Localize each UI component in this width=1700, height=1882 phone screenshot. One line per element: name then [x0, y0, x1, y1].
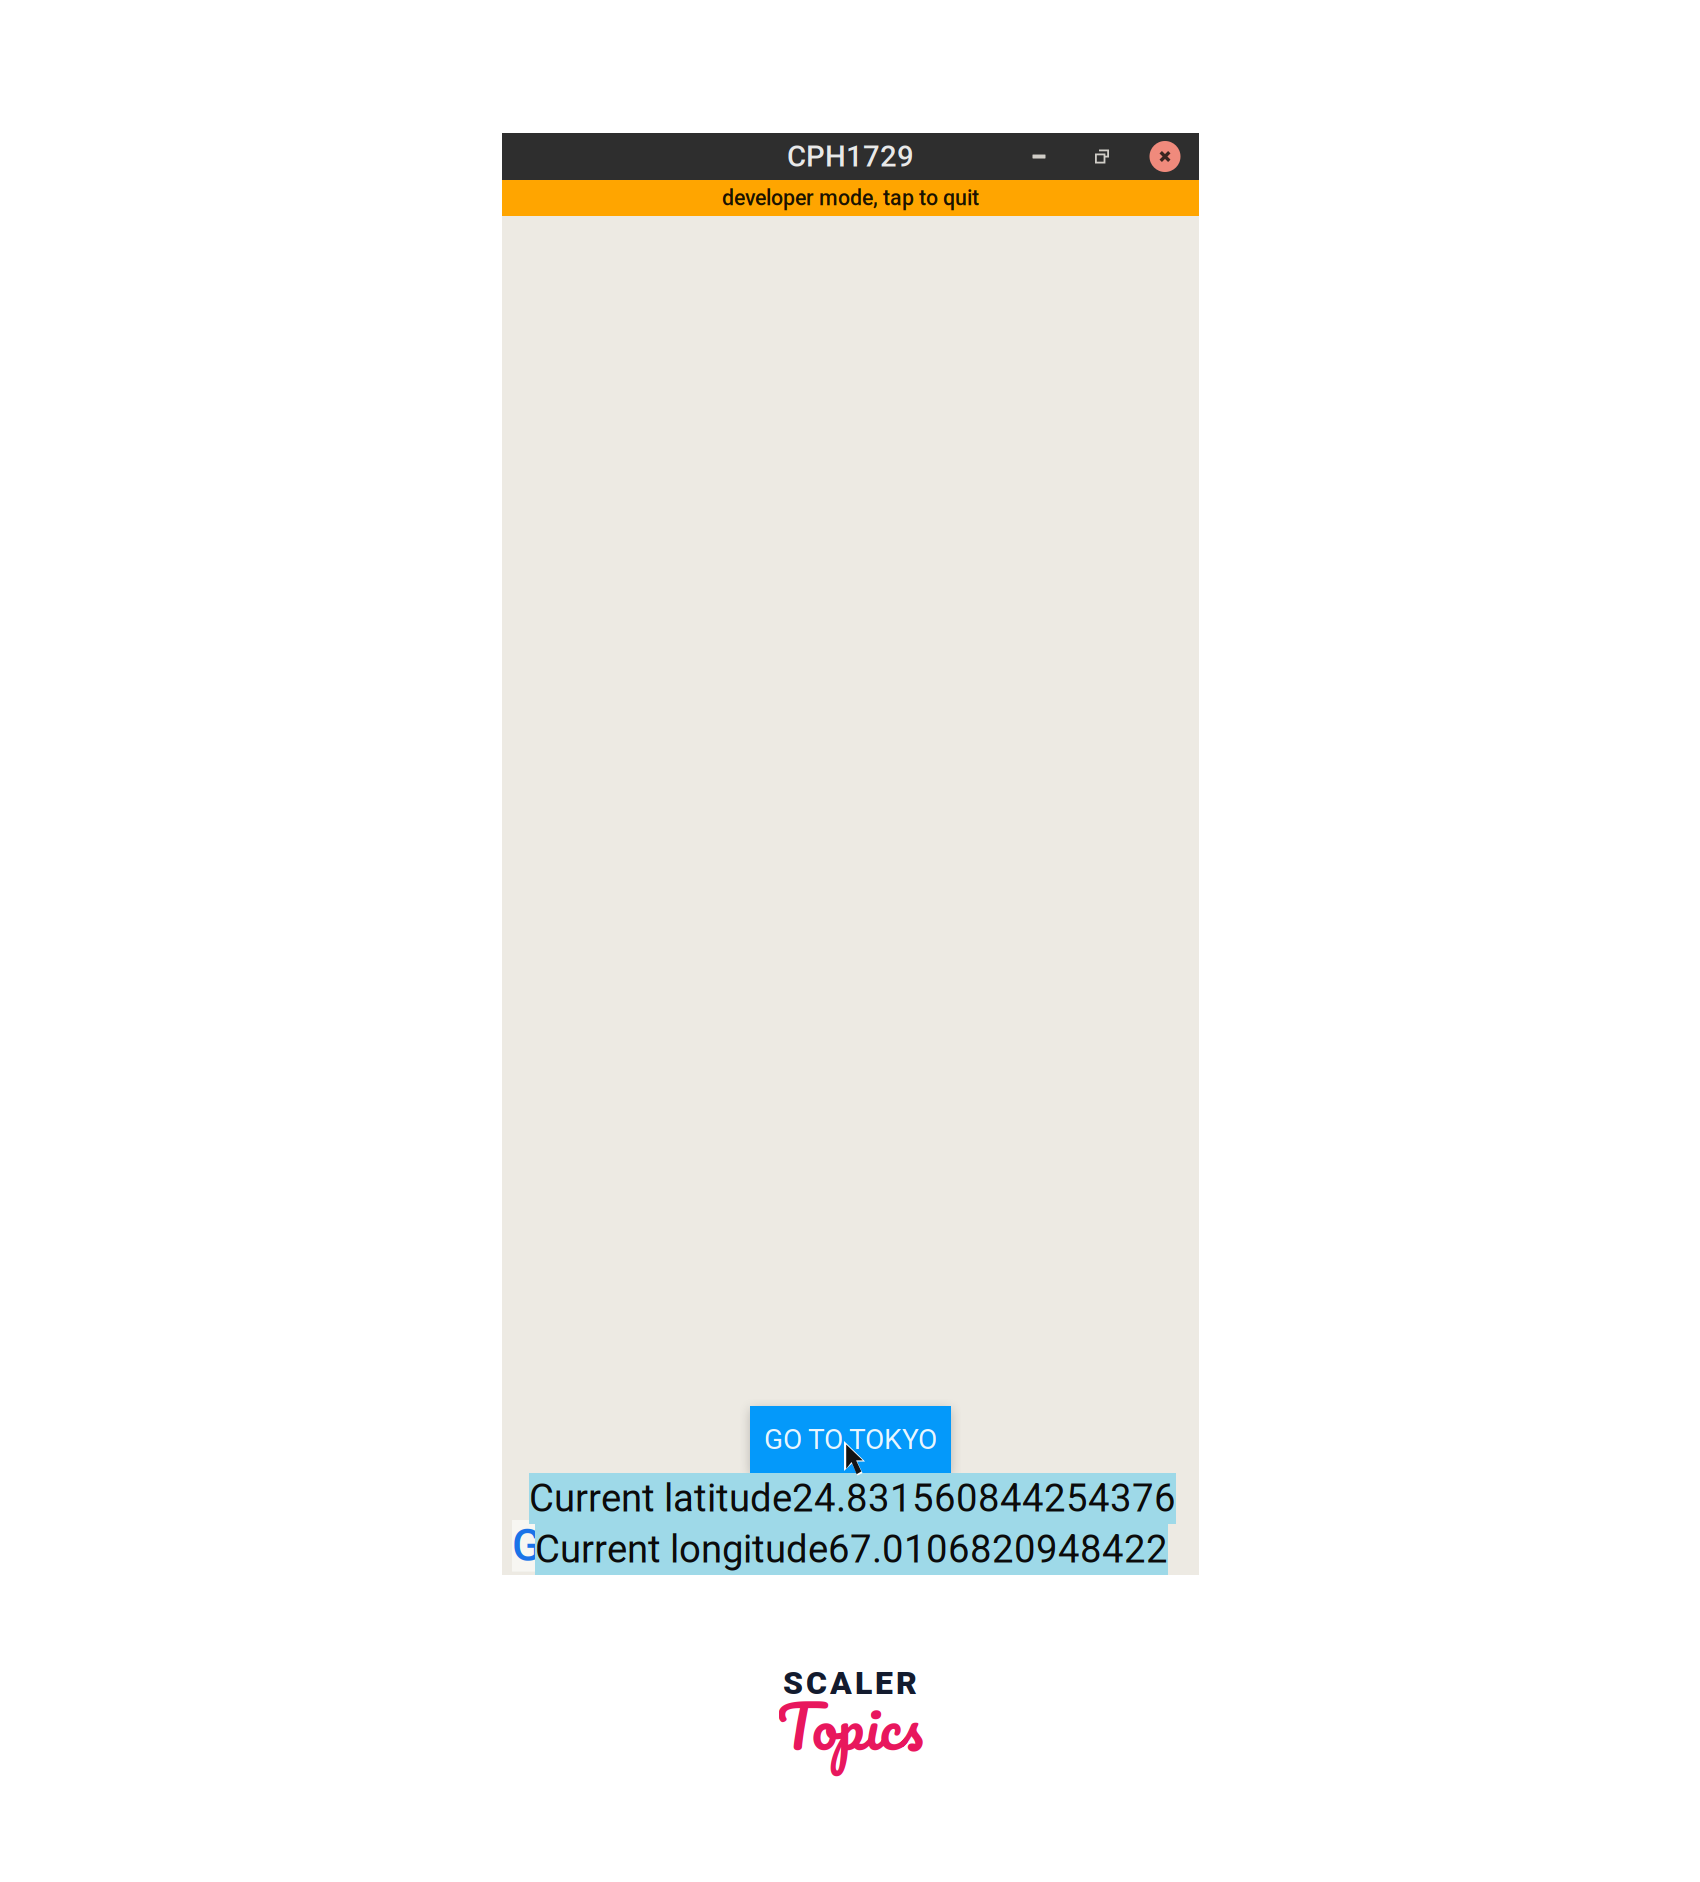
button[interactable]: Restore [1082, 133, 1122, 180]
staticText: Current longitude67.0106820948422 [535, 1527, 1168, 1572]
staticText: developer mode, tap to quit [722, 185, 979, 210]
staticText: G [512, 1520, 542, 1572]
staticText: Current latitude24.831560844254376 [529, 1476, 1176, 1521]
button[interactable]: GO TO TOKYO [750, 1406, 951, 1473]
button[interactable]: developer mode, tap to quit [502, 180, 1199, 216]
button[interactable]: Minimize [1019, 133, 1059, 180]
button[interactable]: Close [1145, 133, 1185, 180]
staticText: S C A L E R [783, 1664, 917, 1702]
staticText: CPH1729 [787, 139, 914, 174]
staticText: GO TO TOKYO [764, 1423, 937, 1456]
staticText: Topics [776, 1676, 923, 1776]
